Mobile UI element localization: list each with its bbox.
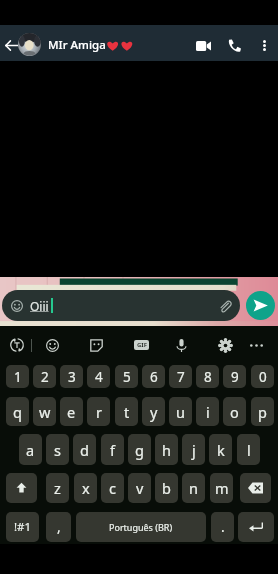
button[interactable]: Settings [214,334,236,356]
button[interactable]: o [223,397,246,426]
staticText: o [230,402,239,422]
button[interactable]: Send [246,291,275,320]
button[interactable]: 9 [223,365,246,388]
button[interactable]: 1 [6,365,29,388]
button[interactable]: e [60,397,83,426]
staticText: !#1 [14,519,32,535]
staticText: w [39,402,51,422]
button[interactable]: w [33,397,56,426]
button[interactable]: q [6,397,29,426]
button[interactable]: 7 [169,365,192,388]
staticText: g [135,440,144,460]
staticText: v [136,478,144,498]
button[interactable]: a [19,434,42,465]
staticText: e [67,402,76,422]
button[interactable]: Back [0,34,22,56]
staticText: 2 [41,368,49,386]
button[interactable]: , [46,512,71,542]
button[interactable]: v [128,473,151,503]
button[interactable]: Voice input [170,334,192,356]
staticText: b [162,478,171,498]
button[interactable]: l [237,434,260,465]
button[interactable]: 6 [142,365,165,388]
staticText: s [54,440,61,460]
button[interactable]: Voice call [223,34,245,56]
staticText: i [206,402,210,422]
button[interactable]: x [74,473,97,503]
staticText: u [176,402,185,422]
button[interactable]: j [182,434,205,465]
button[interactable]: s [46,434,69,465]
staticText: f [110,440,115,460]
button[interactable]: GIF [134,340,149,350]
button[interactable]: z [46,473,69,503]
staticText: c [109,478,116,498]
button[interactable]: 0 [251,365,274,388]
staticText: y [150,402,158,422]
button[interactable]: 8 [196,365,219,388]
staticText: a [26,440,35,460]
staticText: Português (BR) [109,521,173,533]
staticText: z [54,478,61,498]
staticText: l [247,440,251,460]
button[interactable]: . [211,512,234,542]
button[interactable]: Oiii [2,290,240,321]
staticText: t [124,402,130,422]
staticText: . [221,518,225,536]
button[interactable]: 4 [87,365,110,388]
staticText: GIF [137,341,147,349]
button[interactable]: Shift [6,473,37,503]
staticText: 9 [231,368,239,386]
staticText: 7 [177,368,185,386]
button[interactable]: b [155,473,178,503]
button[interactable]: k [209,434,232,465]
staticText: x [82,478,90,498]
button[interactable]: r [87,397,110,426]
staticText: q [13,402,22,422]
button[interactable]: !#1 [6,512,39,542]
staticText: p [258,402,267,422]
button[interactable]: n [182,473,205,503]
button[interactable]: Video call [192,35,214,57]
staticText: 3 [68,368,76,386]
staticText: 8 [204,368,212,386]
button[interactable]: 5 [115,365,138,388]
button[interactable]: 2 [33,365,56,388]
button[interactable]: c [101,473,124,503]
staticText: 4 [95,368,103,386]
staticText: h [162,440,171,460]
button[interactable]: More options [253,34,275,56]
button[interactable]: Translate [6,334,28,356]
button[interactable]: Stickers [85,334,107,356]
button[interactable]: i [196,397,219,426]
button[interactable]: g [128,434,151,465]
button[interactable]: t [115,397,138,426]
button[interactable]: h [155,434,178,465]
staticText: MIr Amiga [48,37,106,53]
button[interactable]: Português (BR) [76,512,206,542]
staticText: m [215,478,229,498]
staticText: 6 [150,368,158,386]
button[interactable]: u [169,397,192,426]
button[interactable]: y [142,397,165,426]
button[interactable]: m [210,473,233,503]
staticText: 1 [14,368,22,386]
button[interactable]: p [251,397,274,426]
staticText: d [80,440,89,460]
button[interactable]: Enter [238,512,274,542]
staticText: k [217,440,225,460]
button[interactable]: Backspace [240,473,271,503]
button[interactable]: More [245,334,267,356]
button[interactable]: Profile photo [18,33,41,56]
button[interactable]: d [73,434,96,465]
staticText: j [192,440,196,460]
button[interactable]: f [101,434,124,465]
staticText: 0 [259,368,267,386]
button[interactable]: 3 [60,365,83,388]
staticText: 5 [123,368,131,386]
staticText: , [57,518,61,536]
staticText: n [189,478,198,498]
staticText: r [96,402,102,422]
button[interactable]: Emoji [41,334,63,356]
staticText: Oiii [30,298,49,314]
